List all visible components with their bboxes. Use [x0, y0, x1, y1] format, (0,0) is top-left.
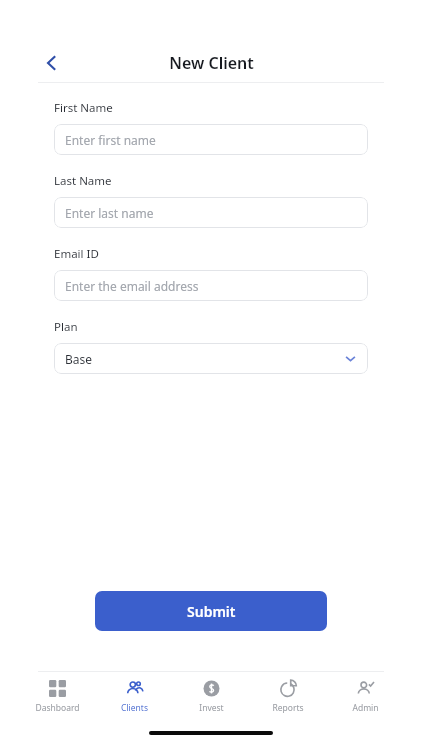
button[interactable]: Invest: [180, 678, 242, 716]
button[interactable]: Base: [54, 343, 368, 374]
staticText: First Name: [54, 100, 113, 116]
button[interactable]: Reports: [257, 678, 319, 716]
button[interactable]: Back: [38, 49, 66, 77]
button[interactable]: Enter first name: [54, 124, 368, 155]
staticText: Last Name: [54, 173, 112, 189]
staticText: Plan: [54, 319, 78, 335]
staticText: New Client: [169, 52, 254, 74]
staticText: Base: [65, 351, 93, 367]
staticText: Reports: [272, 702, 304, 714]
staticText: Enter last name: [65, 205, 154, 221]
staticText: Invest: [199, 702, 224, 714]
button[interactable]: Enter last name: [54, 197, 368, 228]
staticText: Enter first name: [65, 132, 156, 148]
staticText: Dashboard: [35, 702, 80, 714]
button[interactable]: Dashboard: [26, 678, 88, 716]
staticText: Submit: [187, 602, 236, 621]
button[interactable]: Enter the email address: [54, 270, 368, 301]
staticText: Admin: [352, 702, 379, 714]
staticText: Email ID: [54, 246, 99, 262]
button[interactable]: Submit: [95, 591, 327, 631]
staticText: Clients: [121, 702, 148, 714]
button[interactable]: Clients: [103, 678, 165, 716]
button[interactable]: Admin: [334, 678, 396, 716]
staticText: Enter the email address: [65, 278, 199, 294]
